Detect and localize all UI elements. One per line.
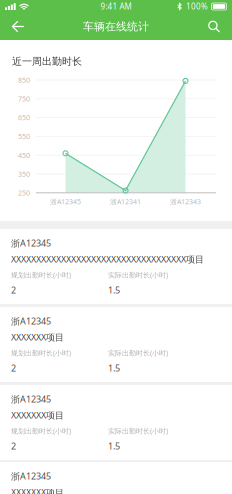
- staticText: 近一周出勤时长: [12, 55, 82, 68]
- staticText: 浙A12345: [11, 470, 51, 482]
- staticText: 车辆在线统计: [83, 20, 149, 33]
- staticText: 2: [11, 440, 16, 452]
- staticText: 1.5: [108, 362, 120, 374]
- staticText: 2: [11, 362, 16, 374]
- staticText: 9:41 AM: [100, 1, 131, 12]
- staticText: 浙A12345: [11, 237, 51, 249]
- staticText: XXXXXXX项目: [11, 409, 64, 421]
- button[interactable]: 浙A12345: [0, 307, 232, 382]
- staticText: 浙A12345: [11, 315, 51, 327]
- staticText: 100%: [186, 1, 208, 12]
- staticText: XXXXXXX项目: [11, 331, 64, 343]
- staticText: 浙A12345: [11, 393, 51, 405]
- staticText: XXXXXXX项目: [11, 486, 64, 494]
- staticText: 实际出勤时长(小时): [108, 270, 168, 279]
- staticText: 450: [18, 150, 30, 160]
- staticText: 2: [11, 284, 16, 296]
- button[interactable]: 浙A12345: [0, 385, 232, 460]
- staticText: XXXXXXXXXXXXXXXXXXXXXXXXXXXXXXXXXXX项目: [11, 253, 204, 265]
- button[interactable]: 浙A12345: [0, 229, 232, 304]
- button[interactable]: Back: [1, 13, 35, 40]
- button[interactable]: Search: [197, 13, 231, 40]
- staticText: 1.5: [108, 284, 120, 296]
- staticText: 浙A12345: [50, 197, 81, 206]
- staticText: 650: [18, 113, 30, 122]
- staticText: 550: [18, 132, 30, 141]
- staticText: 规划出勤时长(小时): [11, 426, 71, 435]
- staticText: 850: [18, 75, 30, 85]
- staticText: 浙A12343: [170, 197, 201, 206]
- staticText: 750: [18, 94, 30, 103]
- staticText: 250: [18, 188, 30, 197]
- staticText: 实际出勤时长(小时): [108, 426, 168, 435]
- staticText: 350: [18, 169, 30, 179]
- staticText: 1.5: [108, 440, 120, 452]
- staticText: 规划出勤时长(小时): [11, 270, 71, 279]
- staticText: 规划出勤时长(小时): [11, 348, 71, 357]
- staticText: 浙A12341: [110, 197, 141, 206]
- button[interactable]: 浙A12345: [0, 462, 232, 494]
- staticText: 实际出勤时长(小时): [108, 348, 168, 357]
